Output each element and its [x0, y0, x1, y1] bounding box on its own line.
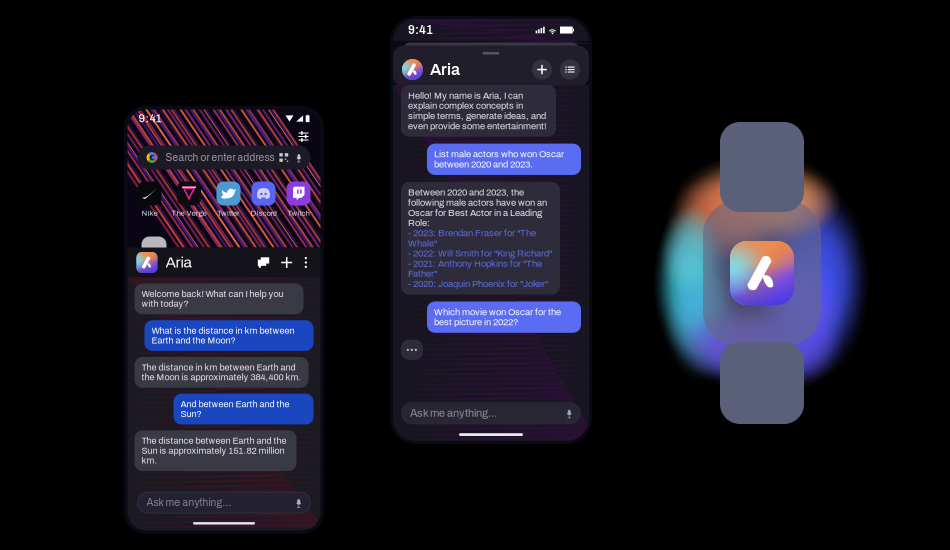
- staticText: The distance in km between Earth and the…: [141, 362, 301, 382]
- button[interactable]: More options: [300, 254, 311, 271]
- staticText: The Verge: [171, 209, 206, 217]
- staticText: Discord: [250, 209, 276, 217]
- staticText: Welcome back! What can I help you with t…: [141, 289, 283, 309]
- staticText: Hello! My name is Aria, I can explain co…: [408, 90, 547, 131]
- staticText: •••: [406, 345, 418, 355]
- staticText: Twitch: [287, 209, 309, 217]
- button[interactable]: New chat: [532, 60, 552, 80]
- staticText: Aria: [165, 254, 191, 271]
- staticText: What is the distance in km between Earth…: [151, 326, 294, 345]
- staticText: The distance between Earth and the Sun i…: [141, 436, 286, 465]
- button[interactable]: Ask me anything...: [137, 492, 310, 513]
- button[interactable]: Nike: [137, 181, 161, 217]
- staticText: Which movie won Oscar for the best pictu…: [434, 307, 561, 327]
- button[interactable]: Ask me anything...: [401, 402, 581, 424]
- staticText: 9:41: [408, 23, 433, 37]
- staticText: List male actors who won Oscar between 2…: [434, 149, 564, 169]
- staticText: Search or enter address: [165, 152, 274, 163]
- staticText: Ask me anything...: [146, 497, 231, 508]
- staticText: 9:41: [138, 112, 161, 125]
- staticText: And between Earth and the Sun?: [180, 399, 289, 419]
- button[interactable]: Twitch: [286, 181, 310, 217]
- staticText: Aria: [430, 61, 460, 78]
- button[interactable]: Settings: [294, 127, 312, 145]
- staticText: Twitter: [217, 209, 240, 217]
- button[interactable]: Search or enter address: [137, 145, 310, 169]
- staticText: Nike: [141, 209, 157, 217]
- button[interactable]: Discord: [250, 181, 276, 217]
- button[interactable]: The Verge: [171, 181, 206, 217]
- staticText: Between 2020 and 2023, the following mal…: [408, 187, 552, 289]
- button[interactable]: New chat: [277, 253, 296, 272]
- staticText: Ask me anything...: [410, 407, 497, 419]
- button[interactable]: Chat history: [560, 60, 580, 80]
- button[interactable]: Twitter: [216, 181, 240, 217]
- button[interactable]: Conversations: [254, 253, 273, 272]
